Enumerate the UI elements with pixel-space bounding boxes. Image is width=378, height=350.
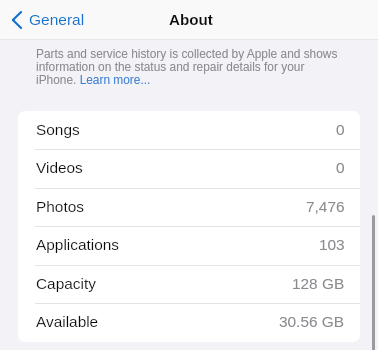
staticText: Songs bbox=[36, 121, 80, 138]
button[interactable]: Songs bbox=[18, 111, 360, 149]
staticText: Capacity bbox=[36, 275, 96, 292]
staticText: General bbox=[29, 11, 85, 28]
staticText: Parts and service history is collected b… bbox=[36, 47, 338, 86]
staticText: Available bbox=[36, 313, 99, 330]
button[interactable]: Videos bbox=[18, 149, 360, 187]
staticText: 30.56 GB bbox=[279, 313, 345, 330]
staticText: 0 bbox=[336, 159, 345, 176]
staticText: Applications bbox=[36, 236, 119, 253]
button[interactable]: Capacity bbox=[18, 265, 360, 303]
button[interactable]: Available bbox=[18, 303, 360, 341]
button[interactable]: Back bbox=[0, 0, 93, 39]
button[interactable]: Learn more bbox=[77, 73, 150, 86]
button[interactable]: Applications bbox=[18, 226, 360, 264]
staticText: 0 bbox=[336, 121, 345, 138]
staticText: About bbox=[169, 11, 213, 28]
staticText: Photos bbox=[36, 198, 84, 215]
staticText: Videos bbox=[36, 159, 83, 176]
other: Back bbox=[12, 11, 22, 29]
staticText: 128 GB bbox=[292, 275, 345, 292]
staticText: 103 bbox=[319, 236, 345, 253]
button[interactable]: Photos bbox=[18, 188, 360, 226]
staticText: 7,476 bbox=[306, 198, 345, 215]
